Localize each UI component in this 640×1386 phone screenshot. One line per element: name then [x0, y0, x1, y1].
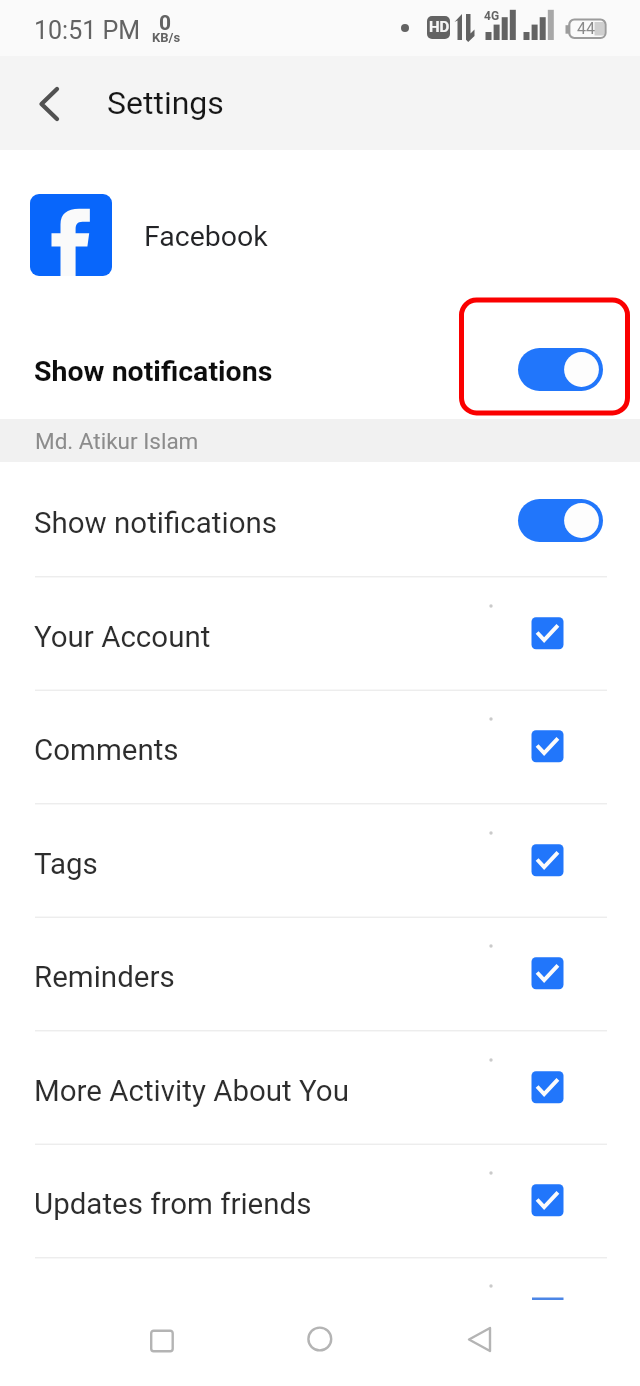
staticText: More Activity About You [34, 1074, 349, 1109]
button[interactable]: Updates from friends [0, 1144, 640, 1258]
button[interactable]: Facebook [0, 150, 640, 319]
staticText: Settings [107, 84, 224, 122]
button[interactable]: Back [425, 1300, 532, 1386]
button[interactable]: Show notifications [0, 319, 640, 419]
staticText: Show notifications [34, 355, 273, 388]
staticText: Tags [34, 847, 98, 882]
staticText: Comments [34, 733, 179, 768]
staticText: 0 [159, 11, 172, 36]
staticText: 44 [577, 19, 595, 38]
button[interactable]: Reminders [0, 917, 640, 1031]
button[interactable]: Show notifications [0, 463, 640, 577]
staticText: KB/s [152, 30, 181, 45]
staticText: 10:51 PM [34, 16, 141, 45]
staticText: Reminders [34, 960, 175, 995]
button[interactable]: Comments [0, 690, 640, 804]
staticText: Show notifications [34, 506, 278, 541]
button[interactable]: More Activity About You [0, 1031, 640, 1145]
staticText: Updates from friends [34, 1187, 312, 1222]
staticText: Md. Atikur Islam [35, 428, 199, 454]
staticText: HD [429, 18, 450, 36]
button[interactable]: Home [266, 1300, 373, 1386]
staticText: Your Account [34, 620, 211, 655]
button[interactable]: Navigate up [18, 73, 78, 133]
staticText: 4G [484, 9, 500, 23]
staticText: Facebook [144, 220, 268, 253]
button[interactable]: Your Account [0, 577, 640, 691]
button[interactable]: Recent apps [107, 1300, 214, 1386]
button[interactable]: Tags [0, 804, 640, 918]
